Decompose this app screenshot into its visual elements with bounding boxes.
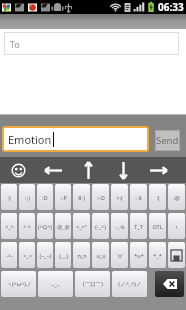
button[interactable]: 8-) — [73, 184, 90, 210]
staticText: (^Q^) — [38, 223, 52, 230]
button[interactable]: To — [4, 32, 179, 55]
button[interactable]: u_u — [92, 242, 109, 268]
button[interactable] — [168, 242, 185, 268]
button[interactable]: :-O — [92, 184, 109, 210]
staticText: :D — [42, 194, 48, 201]
staticText: ~_~ — [51, 281, 60, 288]
staticText: (ノ^_^)ノ — [118, 280, 142, 288]
staticText: :-) — [25, 194, 30, 201]
staticText: *_* — [153, 252, 162, 259]
staticText: :( — [156, 194, 160, 201]
button[interactable]: \(^o^)/ — [168, 213, 185, 239]
button[interactable]: OTL — [149, 213, 166, 239]
staticText: *u* — [134, 252, 144, 259]
button[interactable]: @_@ — [55, 213, 71, 239]
staticText: =_=" — [76, 223, 87, 230]
staticText: Send — [156, 134, 179, 147]
button[interactable]: (￣口￣) — [75, 271, 110, 297]
button[interactable]: *_* — [149, 242, 166, 268]
button[interactable]: -^- — [1, 242, 17, 268]
button[interactable] — [155, 271, 184, 297]
staticText: (-_^) — [95, 223, 106, 230]
button[interactable]: =_=" — [73, 213, 90, 239]
staticText: :-$ — [135, 194, 142, 201]
staticText: Emotion — [8, 132, 52, 147]
button[interactable]: Up — [71, 157, 106, 183]
staticText: 06:33 — [158, 0, 184, 14]
button[interactable]: ^_^ — [1, 213, 17, 239]
button[interactable]: :-P — [55, 184, 71, 210]
staticText: T_T — [134, 223, 143, 230]
staticText: (._.) — [59, 252, 68, 259]
staticText: OTL — [152, 223, 163, 230]
staticText: @_@ — [57, 223, 70, 230]
button[interactable]: (~_~) — [37, 242, 53, 268]
staticText: :@ — [173, 194, 180, 201]
staticText: -_-b — [115, 223, 125, 230]
button[interactable]: ヽ(^ω^)ノ — [1, 271, 36, 297]
button[interactable]: (ノ^_^)ノ — [112, 271, 147, 297]
button[interactable]: Left — [36, 157, 71, 183]
button[interactable]: Emoticons — [0, 157, 36, 183]
staticText: 'o' — [117, 252, 123, 259]
button[interactable]: >:( — [111, 184, 128, 210]
staticText: 8-) — [78, 194, 85, 201]
button[interactable]: -_-b — [111, 213, 128, 239]
button[interactable]: (._.) — [55, 242, 71, 268]
button[interactable]: ^ ^ — [19, 213, 35, 239]
staticText: ^ ^ — [23, 223, 31, 230]
staticText: n_n — [77, 252, 87, 259]
button[interactable]: Emotion — [4, 128, 147, 150]
button[interactable]: :( — [149, 184, 166, 210]
staticText: >_< — [23, 252, 32, 259]
button[interactable]: n_n — [73, 242, 90, 268]
staticText: \(^o^)/ — [168, 223, 185, 230]
staticText: -^- — [6, 252, 13, 259]
button[interactable]: T_T — [130, 213, 147, 239]
staticText: (￣口￣) — [83, 280, 103, 288]
button[interactable]: *u* — [130, 242, 147, 268]
button[interactable]: :-) — [19, 184, 35, 210]
button[interactable]: Down — [106, 157, 141, 183]
staticText: (~_~) — [39, 252, 52, 259]
button[interactable]: :) — [1, 184, 17, 210]
button[interactable]: :@ — [168, 184, 185, 210]
staticText: :-P — [60, 194, 67, 201]
button[interactable]: :-$ — [130, 184, 147, 210]
staticText: ヽ(^ω^)ノ — [6, 280, 32, 288]
button[interactable]: Send — [155, 130, 180, 151]
button[interactable]: ~_~ — [38, 271, 73, 297]
button[interactable]: >_< — [19, 242, 35, 268]
staticText: To — [10, 38, 20, 50]
staticText: u_u — [96, 252, 106, 259]
button[interactable]: (-_^) — [92, 213, 109, 239]
button[interactable]: :D — [37, 184, 53, 210]
staticText: :-O — [97, 194, 105, 201]
button[interactable]: 'o' — [111, 242, 128, 268]
button[interactable]: (^Q^) — [37, 213, 53, 239]
staticText: :) — [7, 194, 11, 201]
button[interactable]: Right — [141, 157, 176, 183]
staticText: ^_^ — [5, 223, 14, 230]
staticText: >:( — [116, 194, 123, 201]
